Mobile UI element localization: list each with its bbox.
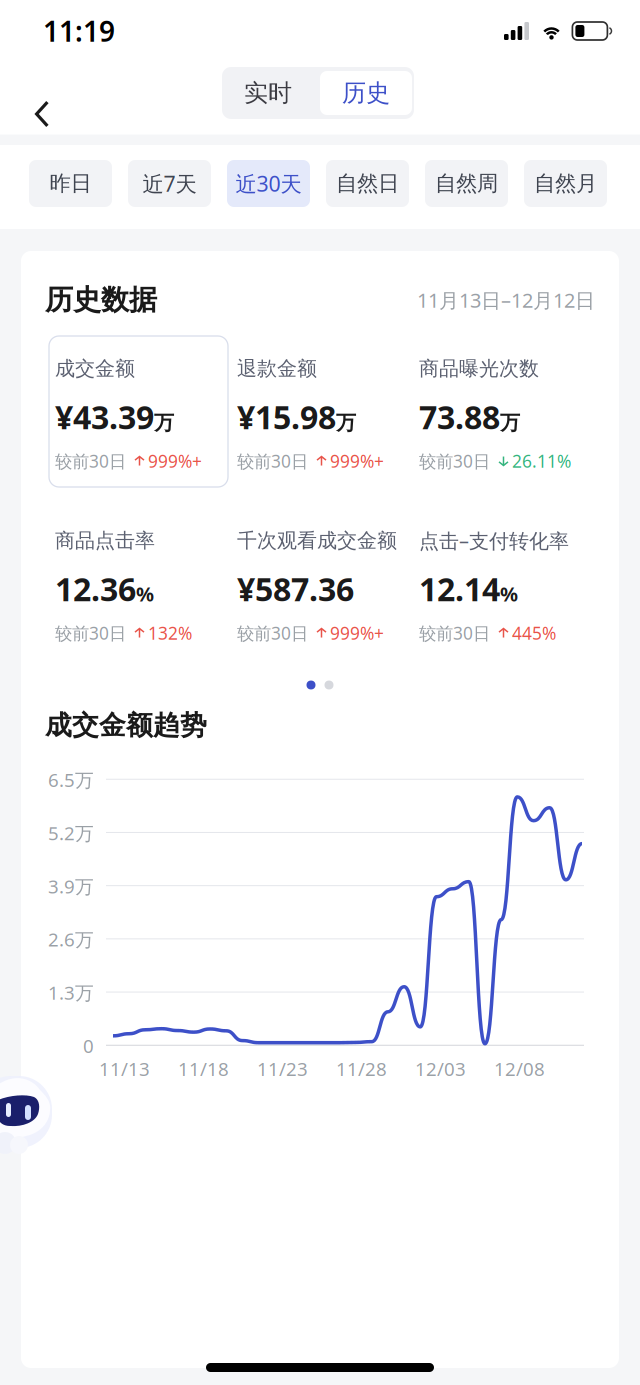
staticText: 万 xyxy=(336,410,356,435)
staticText: 成交金额 xyxy=(55,356,135,381)
button[interactable]: 千次观看成交金额 xyxy=(229,514,411,686)
button[interactable]: 自然日 xyxy=(326,160,409,207)
staticText: 11/18 xyxy=(178,1056,229,1081)
staticText: 11:19 xyxy=(43,12,115,50)
staticText: 较前30日 xyxy=(55,621,126,644)
staticText: 较前30日 xyxy=(419,621,490,644)
staticText: 历史数据 xyxy=(45,283,157,317)
staticText: 5.2万 xyxy=(48,821,94,845)
button[interactable]: 点击–支付转化率 xyxy=(411,514,593,686)
staticText: 较前30日 xyxy=(237,621,308,644)
staticText: 26.11% xyxy=(512,449,571,472)
button[interactable]: 历史 xyxy=(316,67,416,119)
staticText: 11月13日–12月12日 xyxy=(417,287,595,313)
staticText: % xyxy=(500,580,518,607)
staticText: 万 xyxy=(500,410,520,435)
staticText: 12.36 xyxy=(55,567,136,610)
staticText: 999%+ xyxy=(330,449,384,472)
staticText: 999%+ xyxy=(148,449,202,472)
staticText: 昨日 xyxy=(49,170,91,197)
staticText: 点击–支付转化率 xyxy=(419,527,569,554)
staticText: 11/28 xyxy=(336,1056,387,1081)
staticText: 较前30日 xyxy=(55,449,126,472)
staticText: 近7天 xyxy=(142,169,196,198)
staticText: 较前30日 xyxy=(419,449,490,472)
staticText: 较前30日 xyxy=(237,449,308,472)
staticText: 12/03 xyxy=(415,1056,466,1081)
staticText: 11/23 xyxy=(257,1056,308,1081)
staticText: 近30天 xyxy=(235,169,301,198)
staticText: 2.6万 xyxy=(48,927,94,952)
staticText: 实时 xyxy=(244,78,292,108)
staticText: 12/08 xyxy=(494,1056,545,1081)
staticText: 成交金额趋势 xyxy=(45,709,207,742)
staticText: 999%+ xyxy=(330,621,384,644)
staticText: 11/13 xyxy=(99,1056,150,1081)
staticText: % xyxy=(136,580,154,607)
button[interactable]: 近7天 xyxy=(128,160,211,207)
button[interactable]: 退款金额 xyxy=(229,342,411,514)
button[interactable]: Back xyxy=(0,51,72,155)
button[interactable]: 昨日 xyxy=(29,160,112,207)
button[interactable]: 商品点击率 xyxy=(47,514,229,686)
staticText: 445% xyxy=(512,621,556,644)
staticText: 1.3万 xyxy=(48,980,94,1005)
staticText: 73.88 xyxy=(419,395,500,438)
staticText: 商品曝光次数 xyxy=(419,356,539,381)
staticText: 千次观看成交金额 xyxy=(237,528,397,553)
button[interactable]: 成交金额 xyxy=(47,342,229,514)
staticText: 商品点击率 xyxy=(55,528,155,553)
button[interactable]: Assistant xyxy=(0,1072,56,1168)
staticText: 6.5万 xyxy=(48,767,94,792)
button[interactable]: 自然周 xyxy=(425,160,508,207)
staticText: 自然日 xyxy=(336,170,399,197)
staticText: 退款金额 xyxy=(237,356,317,381)
button[interactable]: 自然月 xyxy=(524,160,607,207)
staticText: 历史 xyxy=(342,78,390,108)
staticText: ¥15.98 xyxy=(237,395,336,438)
staticText: 自然月 xyxy=(534,170,597,197)
staticText: 132% xyxy=(148,621,192,644)
staticText: 0 xyxy=(83,1033,94,1058)
staticText: ¥43.39 xyxy=(55,395,154,438)
staticText: 万 xyxy=(154,410,174,435)
button[interactable]: 近30天 xyxy=(227,160,310,207)
staticText: 3.9万 xyxy=(48,874,94,899)
button[interactable]: 实时 xyxy=(220,67,316,119)
button[interactable]: 商品曝光次数 xyxy=(411,342,593,514)
staticText: ¥587.36 xyxy=(237,567,354,610)
staticText: 自然周 xyxy=(435,170,498,197)
staticText: 12.14 xyxy=(419,567,500,610)
